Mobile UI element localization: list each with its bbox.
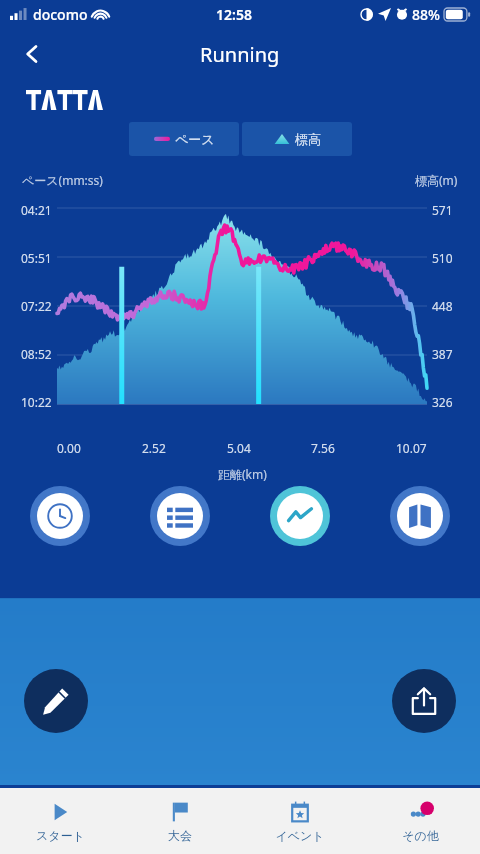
staticText: 10.07 xyxy=(396,440,427,456)
staticText: イベント xyxy=(275,828,325,843)
staticText: 標高 xyxy=(295,131,321,147)
staticText: 08:52 xyxy=(21,346,52,362)
staticText: 387 xyxy=(432,346,453,362)
staticText: 07:22 xyxy=(21,298,52,314)
staticText: 04:21 xyxy=(21,202,52,218)
button[interactable]: Summary xyxy=(30,486,90,546)
staticText: その他 xyxy=(402,828,439,843)
staticText: docomo xyxy=(33,5,88,24)
button[interactable]: 大会 xyxy=(120,788,240,854)
button[interactable]: Map xyxy=(390,486,450,546)
button[interactable]: Share xyxy=(392,669,456,733)
button[interactable]: Back xyxy=(10,32,54,76)
staticText: 2.52 xyxy=(142,440,166,456)
staticText: 571 xyxy=(432,202,453,218)
staticText: 5.04 xyxy=(227,440,251,456)
staticText: 大会 xyxy=(168,828,192,843)
staticText: 12:58 xyxy=(216,5,252,24)
staticText: Running xyxy=(200,41,280,68)
button[interactable]: イベント xyxy=(240,788,360,854)
staticText: 448 xyxy=(432,298,453,314)
staticText: 326 xyxy=(432,394,453,410)
staticText: 標高(m) xyxy=(415,172,458,188)
button[interactable]: その他 xyxy=(360,788,480,854)
staticText: ペース xyxy=(175,131,215,147)
button[interactable]: ペース xyxy=(129,122,239,156)
button[interactable]: Splits xyxy=(150,486,210,546)
staticText: 88% xyxy=(412,5,440,24)
staticText: 510 xyxy=(432,250,453,266)
staticText: 05:51 xyxy=(21,250,52,266)
staticText: 10:22 xyxy=(21,394,52,410)
button[interactable]: スタート xyxy=(0,788,120,854)
staticText: 0.00 xyxy=(57,440,81,456)
button[interactable]: 標高 xyxy=(242,122,352,156)
staticText: スタート xyxy=(36,828,85,843)
staticText: 7.56 xyxy=(311,440,335,456)
button[interactable]: Graph xyxy=(270,486,330,546)
button[interactable]: Edit xyxy=(24,669,88,733)
staticText: ペース(mm:ss) xyxy=(22,172,103,188)
staticText: 距離(km) xyxy=(218,466,267,482)
